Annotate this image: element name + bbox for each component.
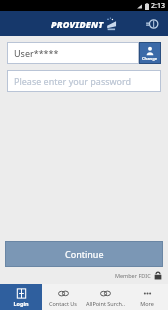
button[interactable]: Change user: [139, 42, 161, 64]
staticText: Please enter your password: [14, 75, 132, 87]
staticText: AllPoint Surch..: [86, 300, 125, 307]
staticText: Continue: [65, 248, 104, 260]
button[interactable]: Contact Us: [42, 284, 84, 310]
staticText: Member FDIC: [115, 272, 151, 279]
staticText: 2:13: [151, 1, 165, 11]
button[interactable]: AllPoint Surch..: [84, 284, 126, 310]
button[interactable]: More: [126, 284, 168, 310]
staticText: Change: [142, 56, 158, 61]
staticText: More: [140, 300, 154, 307]
button[interactable]: Rates: [144, 16, 160, 32]
staticText: User*****: [14, 47, 59, 59]
staticText: PROVIDENT: [51, 18, 104, 30]
button[interactable]: Please enter your password: [7, 70, 161, 92]
button[interactable]: User*****: [7, 42, 139, 64]
button[interactable]: Continue: [5, 241, 163, 267]
staticText: Contact Us: [49, 300, 77, 307]
button[interactable]: Login: [0, 284, 42, 310]
staticText: Login: [13, 300, 29, 307]
